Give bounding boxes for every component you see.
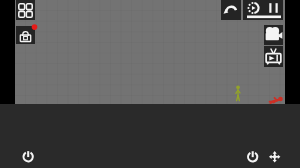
button[interactable]: Undo xyxy=(221,0,241,20)
button[interactable]: Onion skin xyxy=(244,0,263,16)
button[interactable]: Layers xyxy=(16,0,35,20)
button[interactable]: Lock xyxy=(16,26,35,44)
button[interactable]: Power xyxy=(18,146,38,166)
button[interactable]: Record video xyxy=(264,25,283,45)
button[interactable]: Power xyxy=(243,147,263,167)
button[interactable]: Pause xyxy=(264,0,283,16)
button[interactable]: Preview xyxy=(264,46,283,67)
button[interactable]: Move xyxy=(265,147,285,167)
